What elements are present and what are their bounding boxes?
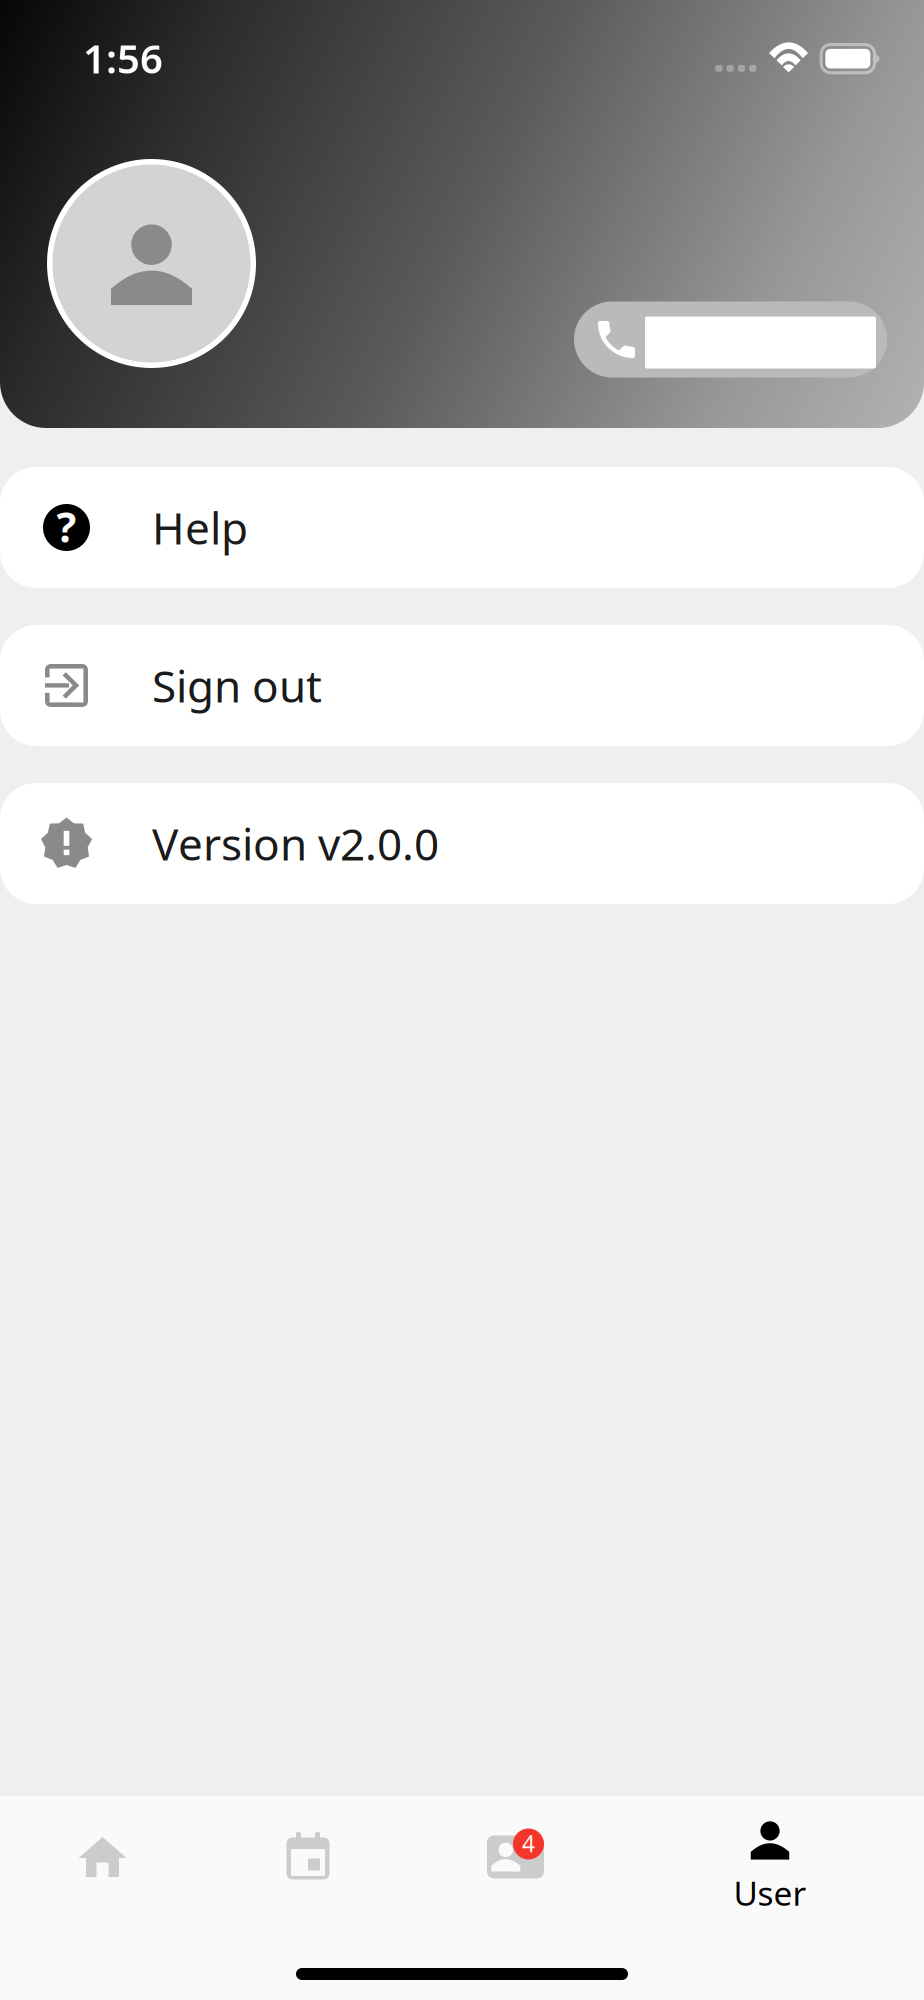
button[interactable]: Contacts, 4 unread [462, 1811, 693, 1929]
button[interactable]: Version v2.0.0 [0, 783, 924, 904]
button[interactable]: Profile photo [47, 159, 256, 368]
button[interactable]: Sign out [0, 625, 924, 746]
button[interactable]: Calendar [231, 1811, 462, 1929]
button[interactable]: Home [0, 1811, 231, 1929]
staticText: Help [152, 498, 248, 557]
staticText: 4 [522, 1828, 535, 1858]
button[interactable]: Phone number [574, 301, 887, 377]
staticText: ? [56, 499, 76, 554]
staticText: Sign out [152, 656, 322, 715]
button[interactable]: ? [0, 467, 924, 588]
button[interactable]: User [693, 1811, 924, 1929]
staticText: 1:56 [83, 31, 163, 84]
staticText: User [733, 1871, 806, 1915]
staticText: Version v2.0.0 [152, 814, 439, 873]
